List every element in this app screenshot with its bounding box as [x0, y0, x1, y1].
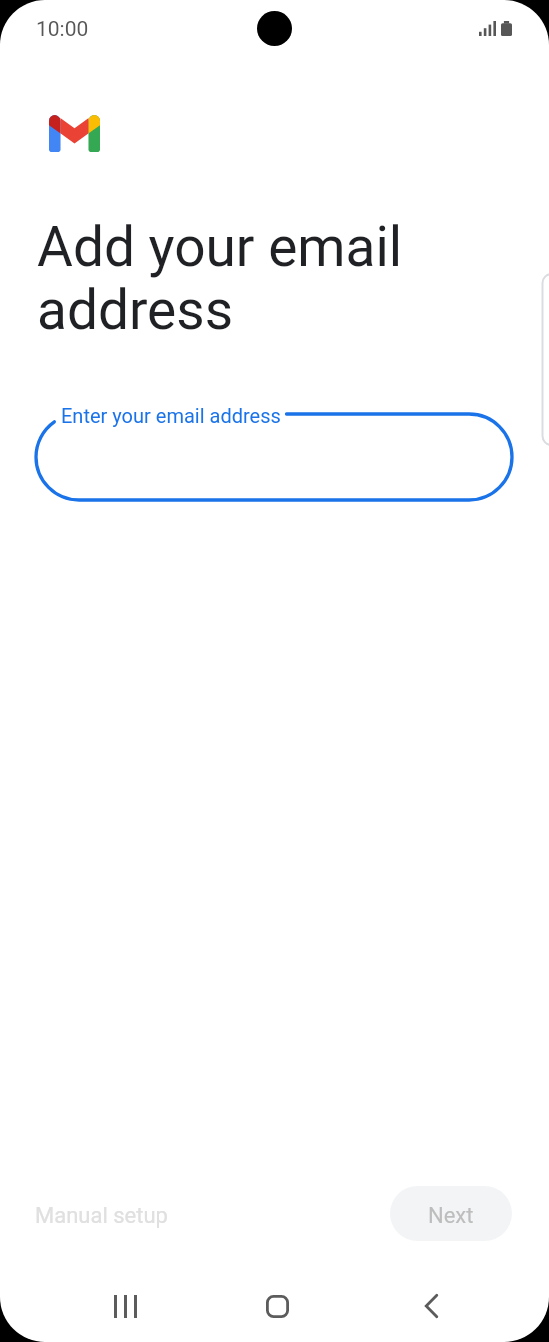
button[interactable]: Next: [390, 1186, 512, 1241]
button[interactable]: Back: [408, 1283, 454, 1329]
button[interactable]: Home: [254, 1283, 300, 1329]
button[interactable]: Enter your email address: [36, 414, 512, 500]
other: Battery full: [501, 21, 512, 36]
staticText: 10:00: [36, 17, 89, 42]
staticText: Add your email address: [37, 215, 403, 342]
button[interactable]: Recent apps: [102, 1283, 148, 1329]
staticText: Enter your email address: [61, 404, 281, 427]
other: Mobile signal: [479, 21, 496, 36]
staticText: Next: [428, 1203, 474, 1229]
other: Gmail: [49, 115, 100, 152]
button[interactable]: Manual setup: [35, 1203, 168, 1229]
staticText: Manual setup: [35, 1203, 168, 1229]
